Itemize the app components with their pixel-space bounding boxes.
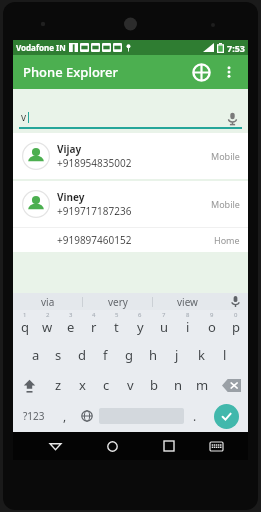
staticText: k [198, 346, 205, 364]
staticText: h [149, 346, 158, 364]
button[interactable]: Change language [75, 400, 99, 432]
staticText: v [127, 376, 134, 394]
staticText: c [103, 376, 110, 394]
staticText: y [137, 318, 144, 336]
staticText: g [125, 346, 133, 364]
button[interactable]: x [70, 370, 94, 400]
button[interactable]: s [47, 340, 70, 370]
button[interactable]: 8 [176, 310, 200, 340]
button[interactable]: 9 [200, 310, 224, 340]
staticText: j [175, 346, 179, 364]
staticText: q [21, 318, 29, 336]
button[interactable]: l [213, 340, 237, 370]
staticText: t [114, 318, 119, 336]
staticText: , [63, 408, 67, 424]
button[interactable]: h [141, 340, 165, 370]
button[interactable]: Browse [186, 57, 216, 87]
button[interactable]: n [166, 370, 190, 400]
button[interactable]: d [70, 340, 93, 370]
staticText: e [67, 318, 75, 336]
button[interactable]: Recent apps [151, 432, 187, 460]
button[interactable]: v [118, 370, 142, 400]
button[interactable]: 0 [224, 310, 248, 340]
button[interactable]: Voice search [224, 110, 240, 126]
staticText: 7 [162, 311, 166, 319]
staticText: n [174, 376, 183, 394]
staticText: view [177, 295, 198, 309]
button[interactable]: g [117, 340, 141, 370]
button[interactable]: 2 [36, 310, 59, 340]
staticText: . [193, 408, 197, 424]
button[interactable]: very [83, 293, 152, 310]
staticText: very [108, 295, 128, 309]
staticText: 3 [69, 311, 73, 319]
button[interactable]: 7 [152, 310, 176, 340]
button[interactable]: Back [37, 432, 73, 460]
staticText: Vijay [57, 142, 82, 156]
button[interactable]: a [24, 340, 47, 370]
button[interactable]: +919897460152 [13, 228, 248, 252]
button[interactable]: Home [94, 432, 130, 460]
staticText: Viney [57, 190, 85, 204]
staticText: ?123 [23, 409, 45, 423]
staticText: Mobile [211, 198, 240, 210]
staticText: via [41, 295, 55, 309]
button[interactable]: . [184, 400, 205, 432]
staticText: z [55, 376, 62, 394]
button[interactable]: b [142, 370, 166, 400]
button[interactable]: Backspace [214, 370, 248, 400]
staticText: +919717187236 [57, 204, 132, 218]
button[interactable]: m [190, 370, 214, 400]
staticText: 7:53 [227, 42, 245, 54]
button[interactable]: Viney [13, 181, 248, 227]
staticText: Mobile [211, 150, 240, 162]
staticText: 9 [210, 311, 214, 319]
button[interactable]: 3 [59, 310, 82, 340]
staticText: u [160, 318, 169, 336]
staticText: l [223, 346, 227, 364]
staticText: Vodafone IN [16, 42, 66, 53]
staticText: +918954835002 [57, 156, 132, 170]
button[interactable]: Vijay [13, 133, 248, 179]
staticText: 2 [46, 311, 50, 319]
staticText: d [78, 346, 86, 364]
button[interactable]: Keyboard [198, 432, 234, 460]
staticText: r [91, 318, 97, 336]
button[interactable]: Shift [13, 370, 46, 400]
staticText: 4 [92, 311, 96, 319]
staticText: Home [214, 234, 240, 246]
button[interactable]: c [94, 370, 118, 400]
button[interactable]: f [93, 340, 117, 370]
button[interactable]: ?123 [13, 400, 54, 432]
button[interactable]: 4 [82, 310, 105, 340]
staticText: v [21, 110, 27, 124]
staticText: s [55, 346, 62, 364]
button[interactable]: view [153, 293, 222, 310]
staticText: x [79, 376, 86, 394]
button[interactable]: 5 [105, 310, 128, 340]
button[interactable]: via [13, 293, 82, 310]
button[interactable]: Voice input [222, 293, 248, 310]
button[interactable]: , [54, 400, 75, 432]
button[interactable]: z [46, 370, 70, 400]
staticText: 5 [115, 311, 119, 319]
staticText: b [150, 376, 158, 394]
button[interactable]: j [165, 340, 189, 370]
button[interactable]: k [189, 340, 213, 370]
button[interactable]: More options [216, 59, 242, 85]
staticText: p [232, 318, 240, 336]
staticText: w [42, 318, 53, 336]
button[interactable]: Done [214, 404, 239, 429]
staticText: 1 [23, 311, 27, 319]
staticText: Phone Explorer [23, 63, 119, 81]
button[interactable]: 1 [13, 310, 36, 340]
button[interactable]: 6 [128, 310, 152, 340]
staticText: 6 [138, 311, 142, 319]
staticText: 0 [234, 311, 238, 319]
staticText: m [196, 376, 209, 394]
staticText: a [32, 346, 40, 364]
staticText: o [208, 318, 216, 336]
staticText: 8 [186, 311, 190, 319]
staticText: i [186, 318, 190, 336]
